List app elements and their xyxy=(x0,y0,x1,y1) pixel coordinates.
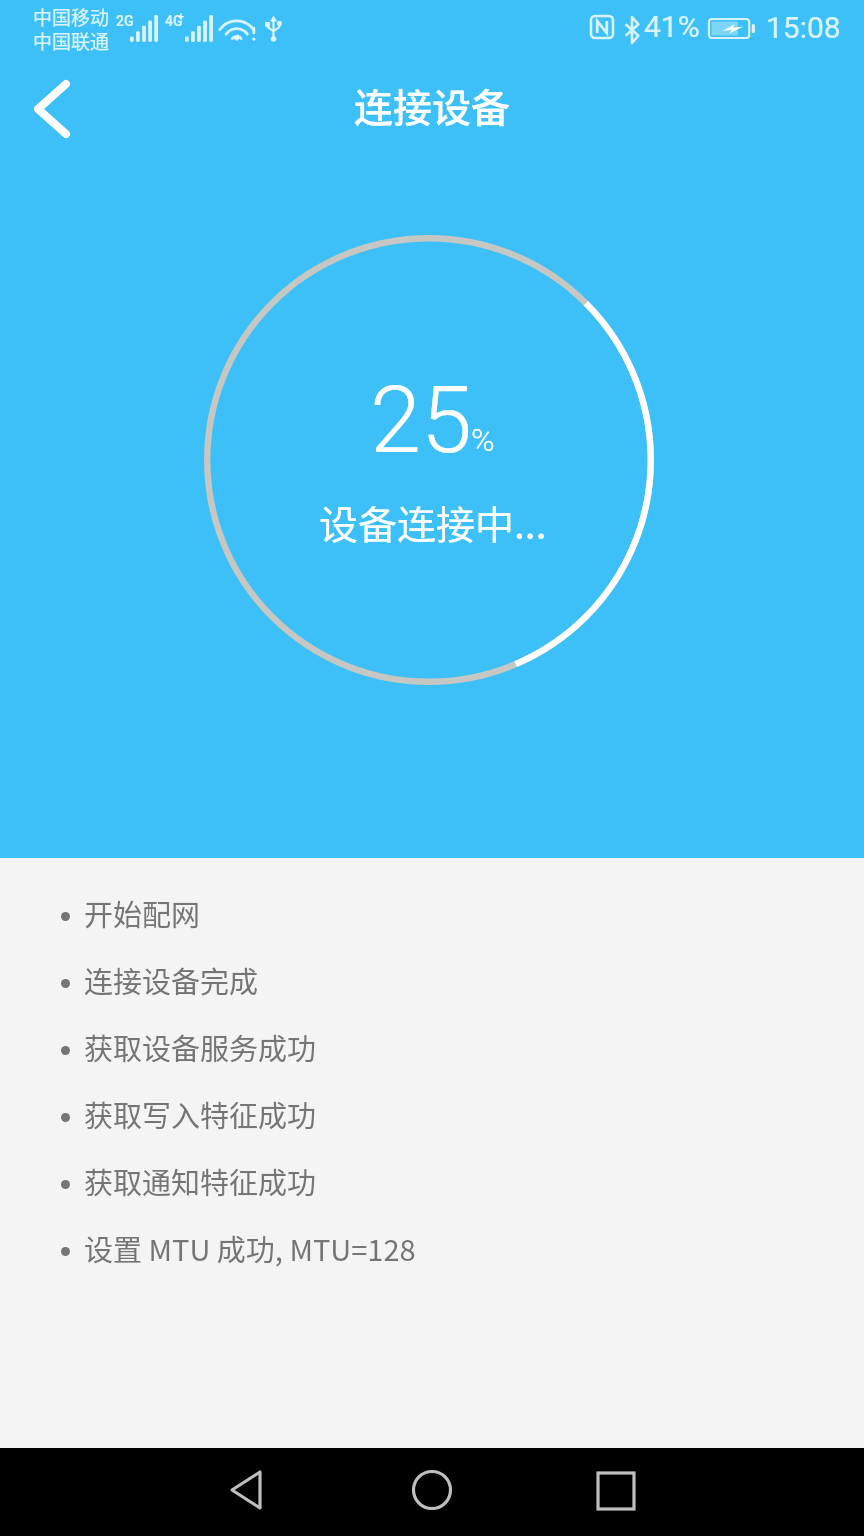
staticText: 41% xyxy=(644,9,700,44)
staticText: 25 xyxy=(370,367,473,475)
button[interactable]: 设置 MTU 成功, MTU=128 xyxy=(0,1214,864,1281)
button[interactable]: Home xyxy=(400,1458,464,1522)
staticText: 中国移动 xyxy=(33,3,110,31)
staticText: 连接设备完成 xyxy=(84,959,259,1001)
staticText: 开始配网 xyxy=(84,892,201,934)
staticText: 4G xyxy=(165,13,183,29)
staticText: + xyxy=(178,10,185,23)
staticText: 2G xyxy=(116,13,134,29)
staticText: 获取写入特征成功 xyxy=(84,1093,317,1135)
button[interactable]: Back xyxy=(216,1458,280,1522)
button[interactable]: 获取写入特征成功 xyxy=(0,1080,864,1147)
staticText: 15:08 xyxy=(766,10,841,45)
staticText: 获取通知特征成功 xyxy=(84,1160,317,1202)
button[interactable]: 获取设备服务成功 xyxy=(0,1013,864,1080)
staticText: 连接设备 xyxy=(354,77,511,133)
staticText: 设置 MTU 成功, MTU=128 xyxy=(84,1227,416,1269)
button[interactable]: Back xyxy=(14,71,90,147)
button[interactable]: Recent apps xyxy=(584,1459,648,1523)
staticText: % xyxy=(471,421,495,459)
staticText: 获取设备服务成功 xyxy=(84,1026,317,1068)
button[interactable]: 开始配网 xyxy=(0,879,864,946)
button[interactable]: 获取通知特征成功 xyxy=(0,1147,864,1214)
staticText: 设备连接中... xyxy=(319,494,547,550)
button[interactable]: 连接设备完成 xyxy=(0,946,864,1013)
staticText: 中国联通 xyxy=(33,27,110,55)
